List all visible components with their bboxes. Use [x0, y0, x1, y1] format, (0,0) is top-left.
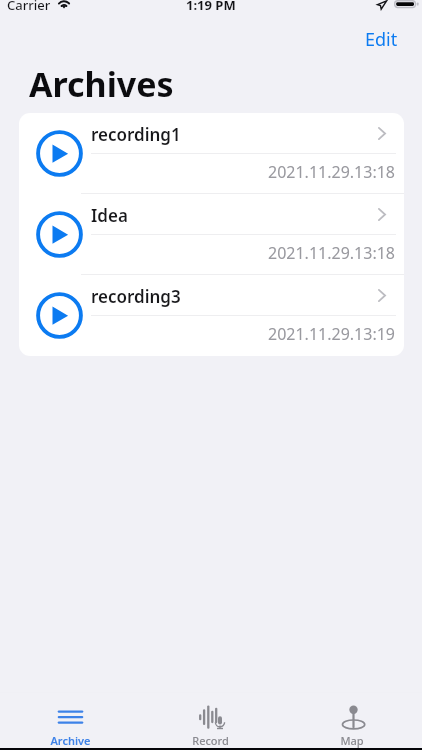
button[interactable]: Archive tab	[0, 703, 140, 748]
button[interactable]: Edit	[343, 18, 422, 51]
button[interactable]: recording1	[19, 113, 404, 194]
staticText: recording1	[91, 123, 181, 146]
staticText: Edit	[365, 27, 398, 46]
button[interactable]: Map tab	[281, 703, 422, 748]
staticText: Record	[192, 733, 229, 748]
staticText: 1:19 PM	[186, 0, 236, 14]
button[interactable]: Record tab	[140, 703, 281, 748]
staticText: 2021.11.29.13:19	[268, 323, 395, 345]
staticText: Map	[340, 733, 364, 748]
staticText: Idea	[91, 204, 128, 227]
staticText: Archive	[50, 733, 91, 748]
button[interactable]: recording3	[19, 275, 404, 356]
staticText: 2021.11.29.13:18	[268, 242, 395, 264]
button[interactable]: Idea	[19, 194, 404, 275]
staticText: recording3	[91, 285, 181, 308]
staticText: Archives	[29, 61, 174, 107]
staticText: Carrier	[7, 0, 51, 14]
staticText: 2021.11.29.13:18	[268, 161, 395, 183]
